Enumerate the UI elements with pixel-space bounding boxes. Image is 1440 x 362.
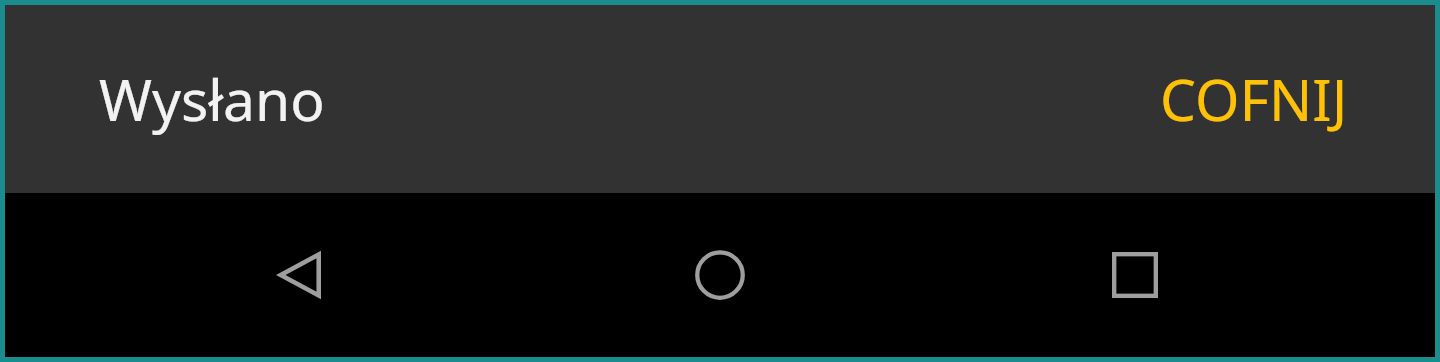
staticText: Wysłano [99, 60, 1160, 138]
staticText: COFNIJ [1160, 60, 1348, 138]
button[interactable]: Home [660, 215, 780, 335]
button[interactable]: Recent apps [1075, 215, 1195, 335]
button[interactable]: Back [240, 215, 360, 335]
button[interactable]: COFNIJ [1160, 60, 1348, 138]
button[interactable]: Wysłano [5, 5, 1435, 193]
